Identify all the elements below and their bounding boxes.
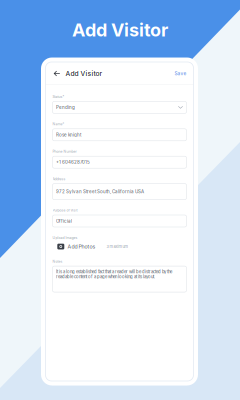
staticText: Pending xyxy=(56,105,75,110)
staticText: Purpose of Visit xyxy=(52,208,77,212)
staticText: Phone Number xyxy=(52,149,76,154)
staticText: Add Visitor xyxy=(72,19,168,41)
staticText: Name* xyxy=(52,122,64,126)
staticText: Notes xyxy=(52,259,62,263)
staticText: Official xyxy=(56,218,72,224)
staticText: Rose knight xyxy=(56,132,81,138)
staticText: Add Visitor xyxy=(65,69,102,78)
button[interactable]: Back xyxy=(51,68,62,79)
staticText: Add Photos xyxy=(67,243,95,250)
staticText: Address xyxy=(52,177,65,181)
staticText: 972 Sylvan Street South, California USA xyxy=(56,189,144,194)
staticText: Save xyxy=(174,71,186,76)
button[interactable]: Add Photos xyxy=(52,242,95,251)
staticText: Upload Images xyxy=(52,236,77,240)
staticText: It is a long established fact that a rea… xyxy=(56,269,172,279)
staticText: +1 6046287015 xyxy=(56,159,90,165)
staticText: Status* xyxy=(52,95,64,99)
button[interactable]: Save xyxy=(173,68,187,79)
staticText: 3 maximum xyxy=(106,244,128,249)
